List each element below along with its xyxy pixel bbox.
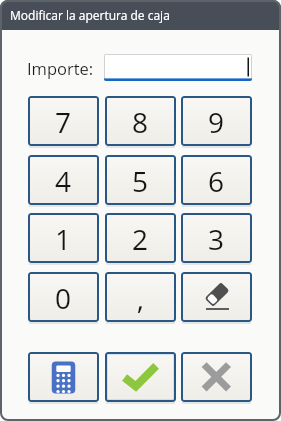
staticText: 6: [208, 162, 225, 200]
button[interactable]: 0: [28, 272, 99, 322]
staticText: 0: [55, 279, 72, 317]
staticText: 1: [55, 220, 72, 258]
button[interactable]: ,: [105, 272, 176, 322]
button[interactable]: 3: [181, 213, 252, 263]
staticText: Importe:: [27, 57, 94, 79]
button[interactable]: 9: [181, 96, 252, 146]
button[interactable]: 1: [28, 213, 99, 263]
staticText: 7: [55, 103, 72, 141]
button[interactable]: 7: [28, 96, 99, 146]
button[interactable]: [181, 352, 252, 402]
button[interactable]: 5: [105, 155, 176, 205]
button[interactable]: 6: [181, 155, 252, 205]
button[interactable]: [104, 54, 252, 81]
staticText: 2: [132, 220, 149, 258]
staticText: 8: [132, 103, 149, 141]
staticText: 5: [132, 162, 149, 200]
button[interactable]: 2: [105, 213, 176, 263]
staticText: 3: [208, 220, 225, 258]
button[interactable]: [28, 352, 99, 402]
staticText: ,: [137, 279, 144, 317]
button[interactable]: 4: [28, 155, 99, 205]
button[interactable]: 8: [105, 96, 176, 146]
staticText: Modificar la apertura de caja: [10, 7, 170, 23]
staticText: 9: [208, 103, 225, 141]
staticText: 4: [55, 162, 72, 200]
button[interactable]: [105, 352, 176, 402]
button[interactable]: [181, 272, 252, 322]
